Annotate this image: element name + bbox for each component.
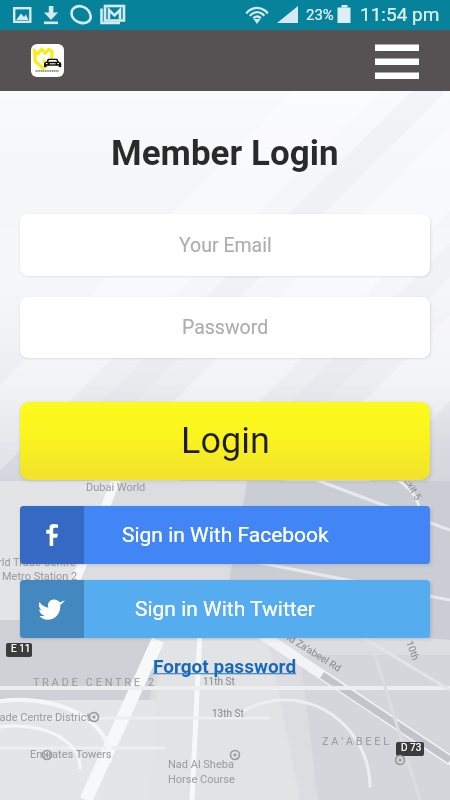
staticText: Sign in With Facebook bbox=[122, 523, 329, 548]
staticText: Dubai World bbox=[86, 481, 146, 494]
button[interactable]: Sign in With Facebook bbox=[20, 506, 430, 564]
staticText: Your Email bbox=[179, 234, 272, 257]
staticText: 23% bbox=[306, 6, 334, 24]
staticText: E 11 bbox=[11, 643, 31, 655]
button[interactable]: Sign in With Twitter bbox=[20, 580, 430, 638]
staticText: 10th bbox=[403, 639, 422, 663]
button[interactable]: Password bbox=[20, 297, 430, 358]
staticText: Nad Al Sheba bbox=[168, 758, 234, 771]
staticText: 11:54 pm bbox=[360, 3, 440, 25]
staticText: Forgot password bbox=[153, 655, 297, 677]
staticText: 13th St bbox=[212, 708, 244, 720]
button[interactable]: Login bbox=[20, 402, 430, 480]
staticText: Emirates Towers bbox=[30, 748, 112, 761]
button[interactable]: Forgot password bbox=[150, 651, 300, 681]
staticText: rld Trade Centre bbox=[0, 556, 76, 569]
staticText: T R A D E C E N T R E 2 bbox=[33, 676, 155, 689]
button[interactable]: Your Email bbox=[20, 214, 430, 276]
button[interactable]: Menu bbox=[375, 42, 419, 78]
staticText: Z A ' A B E E L bbox=[322, 735, 390, 748]
staticText: 11th St bbox=[203, 676, 235, 688]
staticText: 2nd Za'abeel Rd bbox=[277, 627, 344, 675]
staticText: Password bbox=[182, 316, 269, 339]
staticText: rade Centre District bbox=[0, 711, 91, 724]
staticText: D 73 bbox=[401, 742, 422, 754]
staticText: Horse Course bbox=[168, 773, 235, 786]
staticText: Metro Station 2 bbox=[2, 570, 78, 583]
staticText: Sign in With Twitter bbox=[135, 597, 315, 622]
staticText: Login bbox=[181, 420, 270, 462]
staticText: Member Login bbox=[111, 133, 339, 174]
button[interactable]: App logo bbox=[31, 44, 64, 77]
staticText: Exit 5 bbox=[401, 475, 424, 503]
